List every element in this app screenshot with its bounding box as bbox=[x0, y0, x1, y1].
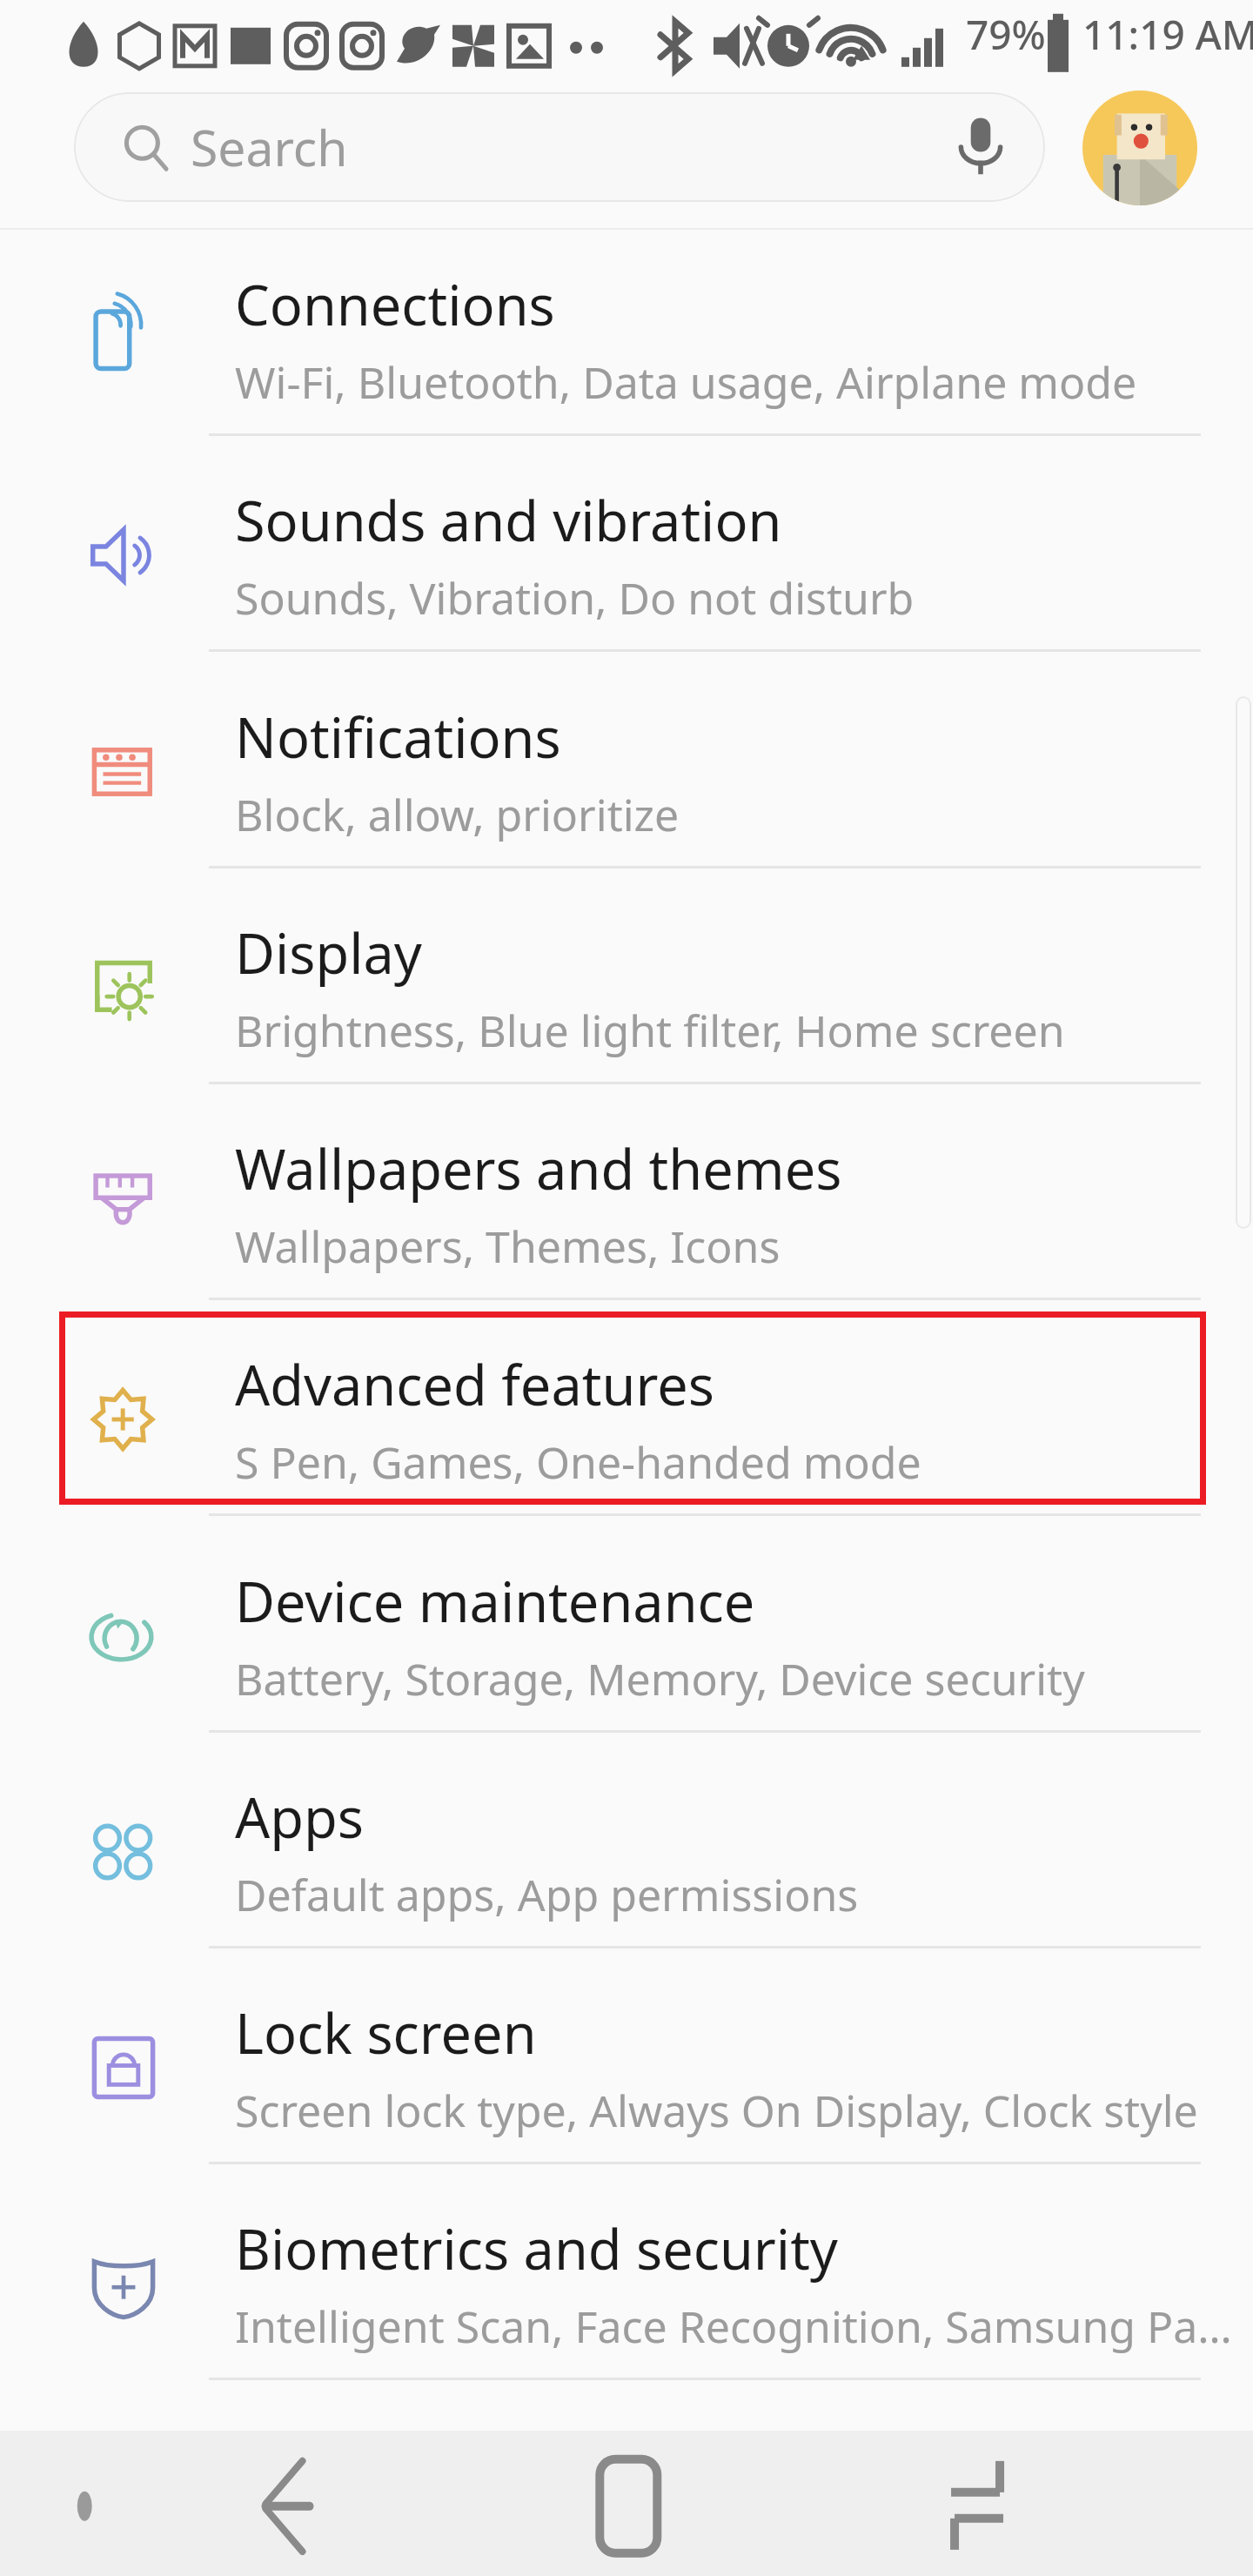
staticText: S Pen, Games, One-handed mode bbox=[235, 1432, 921, 1492]
button[interactable]: Connections bbox=[0, 231, 1253, 447]
staticText: Intelligent Scan, Face Recognition, Sams… bbox=[235, 2297, 1232, 2356]
button[interactable]: Device maintenance bbox=[0, 1528, 1253, 1744]
button[interactable]: Biometrics and security bbox=[0, 2176, 1253, 2392]
staticText: Sounds and vibration bbox=[235, 483, 782, 558]
button[interactable]: Home bbox=[418, 2431, 835, 2576]
staticText: Device maintenance bbox=[235, 1564, 755, 1639]
staticText: Notifications bbox=[235, 700, 561, 775]
button[interactable]: Wallpapers and themes bbox=[0, 1096, 1253, 1311]
staticText: Lock screen bbox=[235, 1996, 537, 2070]
staticText: Biometrics and security bbox=[235, 2211, 838, 2286]
button[interactable]: Voice search bbox=[933, 99, 1029, 195]
staticText: Brightness, Blue light filter, Home scre… bbox=[235, 1001, 1065, 1060]
button[interactable]: Recents bbox=[835, 2431, 1253, 2576]
button[interactable]: Sounds and vibration bbox=[0, 447, 1253, 663]
button[interactable]: Apps bbox=[0, 1744, 1253, 1960]
staticText: Wallpapers and themes bbox=[235, 1131, 842, 1206]
button[interactable]: Lock screen bbox=[0, 1960, 1253, 2176]
staticText: Battery, Storage, Memory, Device securit… bbox=[235, 1649, 1085, 1708]
staticText: Connections bbox=[235, 267, 555, 342]
button[interactable]: Search bbox=[74, 92, 1045, 202]
staticText: Display bbox=[235, 916, 422, 990]
button[interactable]: Back bbox=[0, 2431, 418, 2576]
button[interactable]: Account bbox=[1082, 91, 1197, 205]
button[interactable]: Display bbox=[0, 880, 1253, 1096]
button[interactable]: Advanced features bbox=[0, 1311, 1253, 1527]
staticText: Wallpapers, Themes, Icons bbox=[235, 1217, 781, 1276]
staticText: Block, allow, prioritize bbox=[235, 785, 680, 844]
staticText: Advanced features bbox=[235, 1347, 714, 1422]
staticText: Apps bbox=[235, 1780, 364, 1855]
staticText: Sounds, Vibration, Do not disturb bbox=[235, 568, 915, 627]
staticText: Screen lock type, Always On Display, Clo… bbox=[235, 2081, 1198, 2140]
staticText: 79% bbox=[966, 7, 1046, 62]
staticText: 11:19 AM bbox=[1082, 7, 1253, 62]
button[interactable]: Notifications bbox=[0, 664, 1253, 880]
staticText: Search bbox=[191, 113, 348, 181]
staticText: Wi-Fi, Bluetooth, Data usage, Airplane m… bbox=[235, 352, 1137, 412]
staticText: Default apps, App permissions bbox=[235, 1865, 859, 1924]
